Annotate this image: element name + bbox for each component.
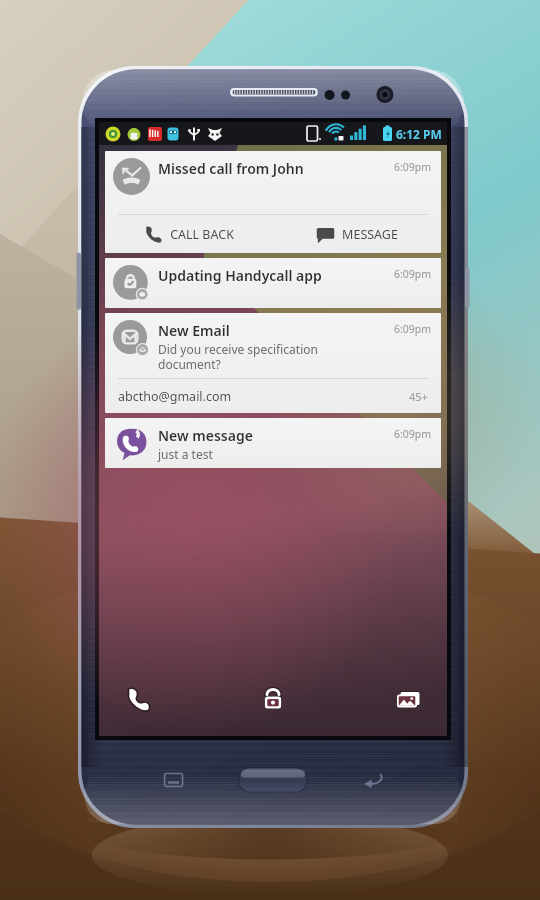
staticText: 6:09pm	[394, 267, 432, 281]
staticText: Updating Handycall app	[158, 266, 322, 285]
staticText: MESSAGE	[342, 226, 398, 243]
button[interactable]: Updating Handycall app	[105, 258, 441, 308]
button[interactable]: Missed call from John	[105, 151, 441, 253]
staticText: Missed call from John	[158, 159, 304, 178]
staticText: 6:09pm	[394, 427, 432, 441]
button[interactable]: New message	[105, 418, 441, 468]
staticText: abctho@gmail.com	[118, 388, 232, 405]
button[interactable]: New Email	[105, 313, 441, 413]
staticText: 6:09pm	[394, 322, 432, 336]
staticText: Did you receive specification document?	[158, 341, 318, 372]
staticText: 6:09pm	[394, 160, 432, 174]
staticText: New message	[158, 426, 253, 445]
button[interactable]: MESSAGE	[273, 215, 441, 253]
staticText: 45+	[409, 389, 428, 404]
button[interactable]: Phone	[119, 680, 157, 718]
staticText: just a test	[158, 446, 213, 462]
staticText: CALL BACK	[170, 226, 234, 243]
button[interactable]: CALL BACK	[105, 215, 273, 253]
staticText: 6:12 PM	[396, 126, 442, 142]
button[interactable]: Unlock	[254, 680, 292, 718]
staticText: New Email	[158, 321, 230, 340]
button[interactable]: Gallery	[389, 680, 427, 718]
